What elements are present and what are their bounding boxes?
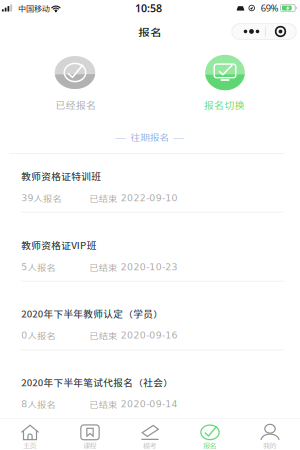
staticText: 已结束 [89, 330, 113, 341]
staticText: 人报名 [28, 261, 52, 273]
staticText: 教师资格证VIP班 [21, 239, 89, 251]
staticText: 8 [21, 399, 27, 409]
staticText: 人报名 [28, 399, 52, 410]
staticText: 5 [21, 262, 27, 272]
staticText: 10:58 [135, 1, 162, 15]
button[interactable]: 教师资格证特训班 [0, 154, 300, 212]
button[interactable]: 报名切换 [150, 51, 300, 114]
staticText: 2020年下半年教师认定（学员） [21, 307, 149, 320]
staticText: 已结束 [89, 399, 113, 410]
staticText: 2022-09-10 [121, 193, 175, 203]
staticText: 人报名 [28, 330, 52, 341]
button[interactable]: 课程 [60, 419, 120, 450]
staticText: 2020-09-14 [121, 399, 175, 409]
button[interactable]: 已经报名 [0, 51, 150, 114]
staticText: 主页 [23, 441, 33, 449]
staticText: 已经报名 [55, 99, 91, 111]
staticText: 69% [261, 2, 279, 14]
button[interactable]: Close [266, 24, 293, 39]
staticText: 往期报名 [130, 131, 162, 143]
staticText: 2020-10-23 [121, 262, 175, 272]
button[interactable]: 2020年下半年教师认定（学员） [0, 282, 300, 350]
staticText: 已结束 [89, 261, 113, 273]
staticText: 我的 [263, 441, 273, 449]
button[interactable]: 教师资格证VIP班 [0, 213, 300, 281]
button[interactable]: 2020年下半年笔试代报名（社会） [0, 350, 300, 418]
staticText: —— [115, 132, 126, 142]
staticText: 0 [21, 330, 27, 341]
staticText: 2020年下半年笔试代报名（社会） [21, 376, 158, 389]
staticText: 已结束 [89, 192, 113, 204]
staticText: 课程 [83, 441, 93, 449]
staticText: 模考 [143, 441, 153, 449]
staticText: 教师资格证特训班 [21, 170, 93, 182]
button[interactable]: More [235, 24, 265, 39]
staticText: 39 [21, 193, 33, 203]
button[interactable]: 主页 [0, 419, 60, 450]
staticText: 2020-09-16 [121, 330, 175, 341]
button[interactable]: 我的 [240, 419, 300, 450]
staticText: 人报名 [34, 192, 58, 204]
staticText: 报名 [138, 24, 158, 38]
staticText: 报名 [203, 441, 213, 449]
button[interactable]: 报名 [180, 419, 240, 450]
staticText: 中国移动 [18, 3, 46, 13]
staticText: —— [173, 132, 184, 142]
button[interactable]: 模考 [120, 419, 180, 450]
staticText: 报名切换 [204, 99, 240, 111]
